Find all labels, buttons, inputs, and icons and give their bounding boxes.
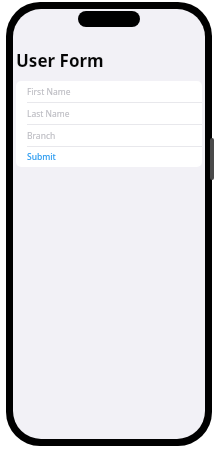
button[interactable]: Last Name — [16, 103, 202, 124]
button[interactable]: Branch — [16, 125, 202, 146]
button[interactable]: First Name — [16, 81, 202, 102]
staticText: Last Name — [27, 108, 70, 120]
other: Power button — [210, 138, 214, 180]
staticText: Branch — [27, 130, 56, 142]
staticText: First Name — [27, 86, 71, 98]
staticText: Submit — [27, 151, 56, 163]
button[interactable]: Submit — [16, 147, 202, 167]
staticText: User Form — [16, 49, 104, 72]
